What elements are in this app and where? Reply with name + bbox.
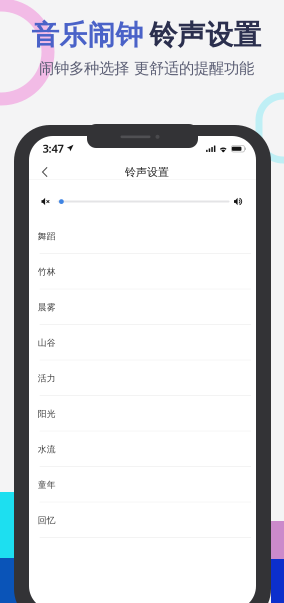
staticText: 音乐闹钟	[31, 18, 143, 52]
staticText: 闹钟多种选择 更舒适的提醒功能	[39, 59, 254, 78]
staticText: 童年	[38, 479, 56, 490]
staticText: 活力	[38, 373, 56, 384]
button[interactable]: 阳光	[29, 396, 256, 431]
staticText: 阳光	[38, 408, 56, 419]
staticText: 3:47	[42, 141, 63, 156]
staticText: 晨雾	[38, 302, 56, 313]
staticText: 竹林	[38, 266, 56, 277]
button[interactable]: 晨雾	[29, 289, 256, 325]
staticText: 舞蹈	[38, 231, 56, 242]
button[interactable]: 舞蹈	[29, 218, 256, 254]
staticText: 山谷	[38, 337, 56, 348]
button[interactable]: 山谷	[29, 325, 256, 360]
button[interactable]: 水流	[29, 431, 256, 467]
staticText: 铃声设置	[125, 165, 169, 179]
staticText: 水流	[38, 444, 56, 455]
staticText: 铃声设置	[149, 18, 261, 52]
staticText: 回忆	[38, 515, 56, 526]
button[interactable]: 活力	[29, 360, 256, 396]
button[interactable]: 童年	[29, 467, 256, 502]
button[interactable]: 竹林	[29, 254, 256, 289]
button[interactable]: 回忆	[29, 502, 256, 538]
